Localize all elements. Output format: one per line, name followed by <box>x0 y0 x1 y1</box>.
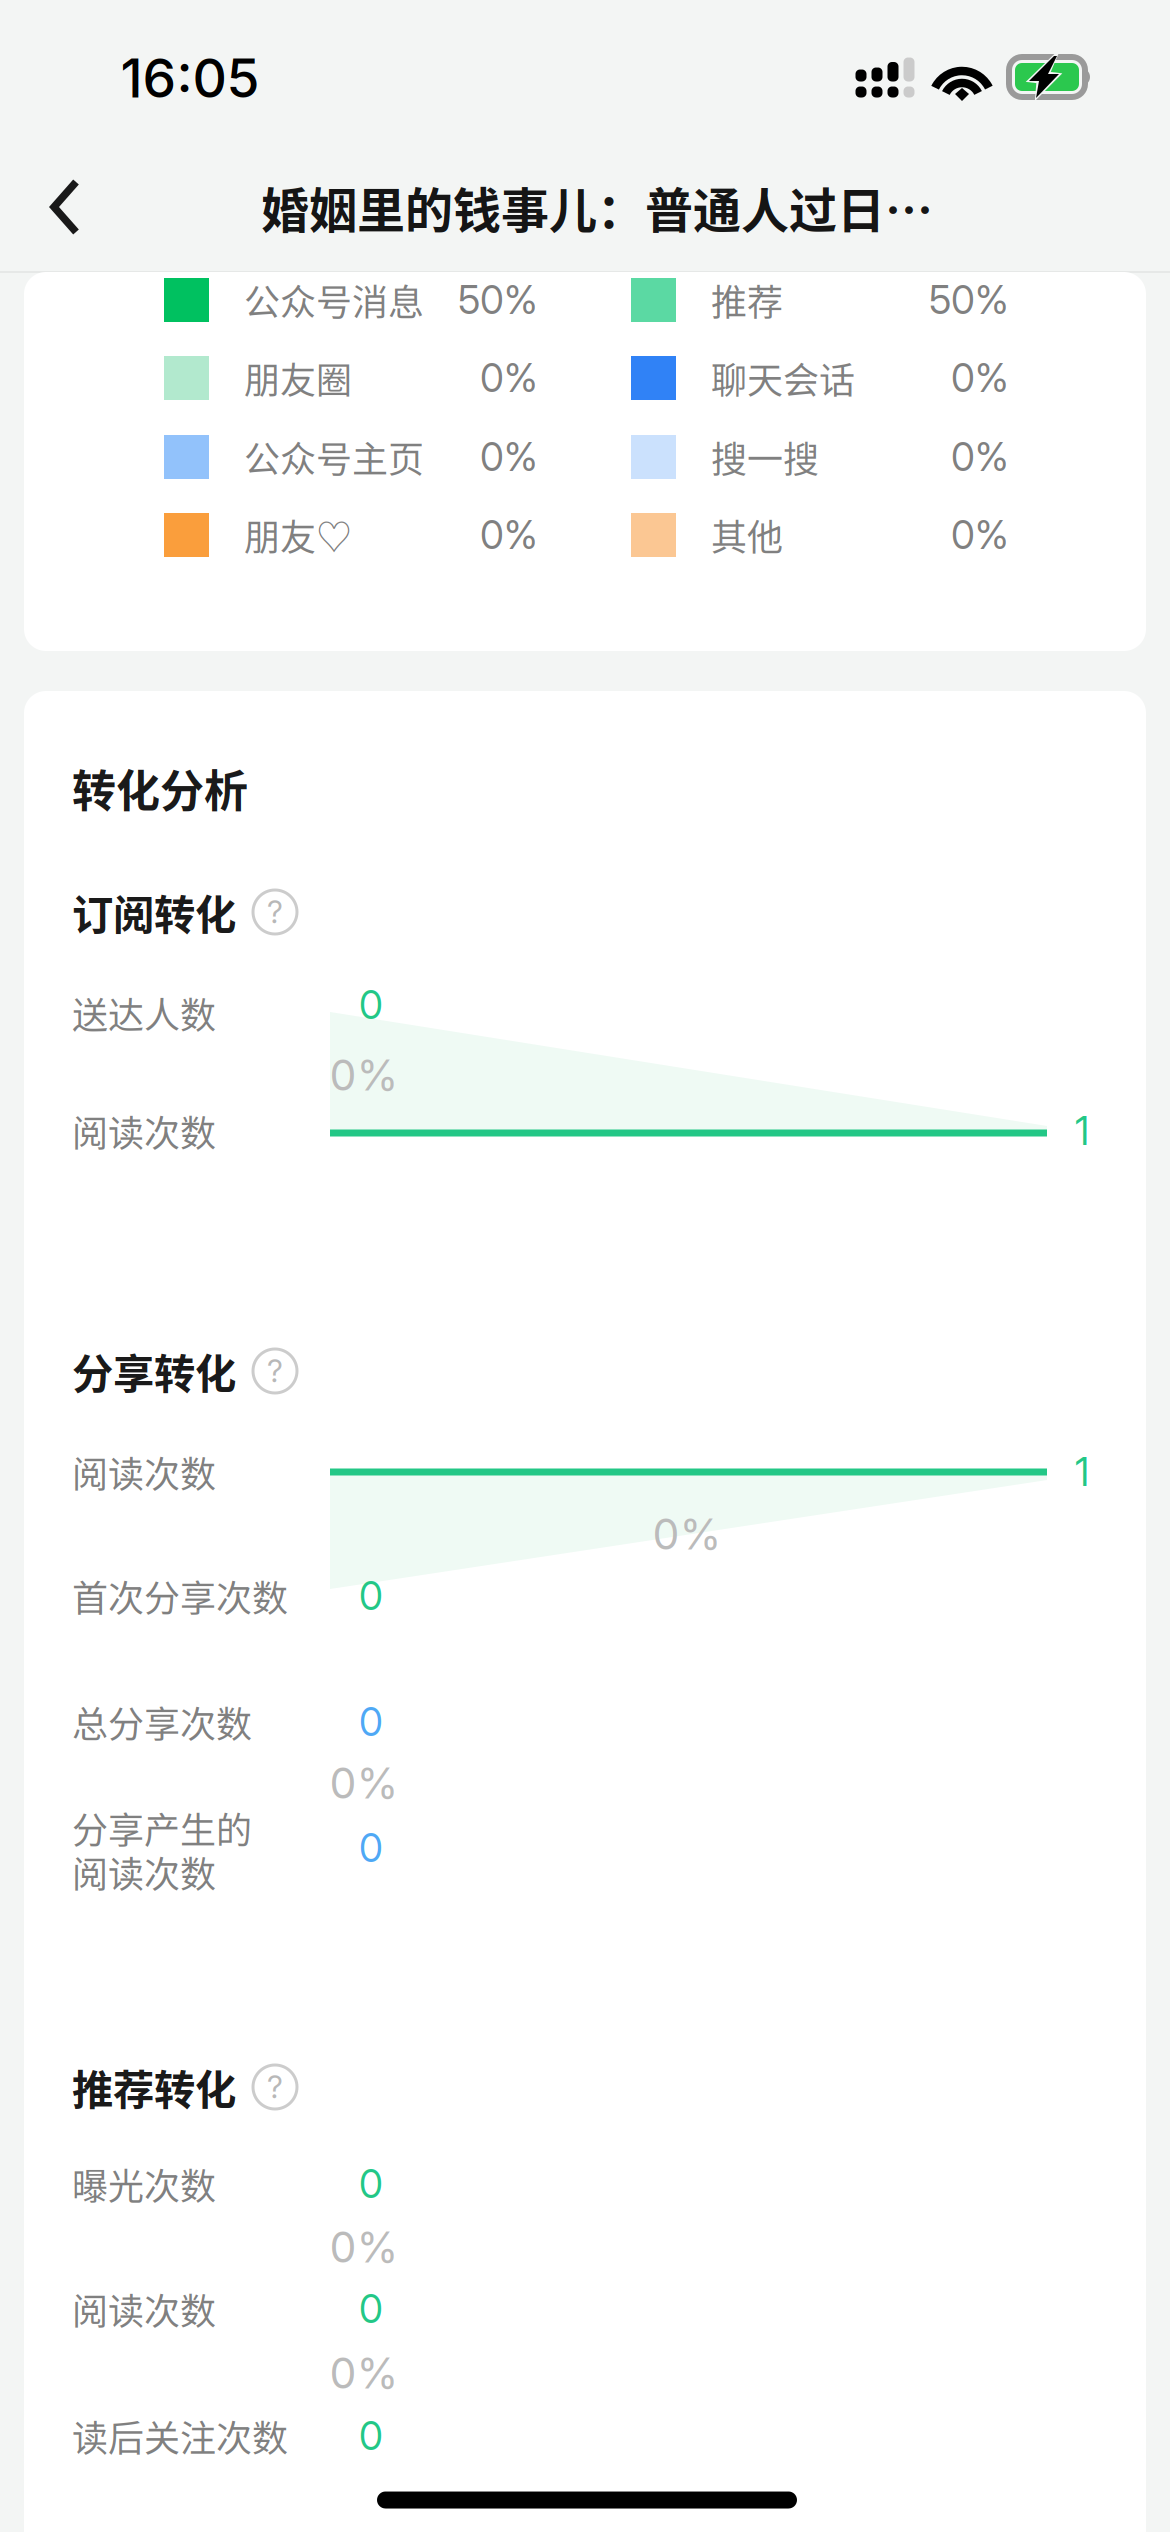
staticText: 朋友♡ <box>244 509 352 561</box>
staticText: 0 <box>359 1825 383 1871</box>
staticText: 推荐转化 <box>72 2057 236 2117</box>
staticText: 读后关注次数 <box>72 2410 288 2462</box>
staticText: 16:05 <box>120 46 259 110</box>
staticText: 1 <box>1075 1449 1089 1495</box>
staticText: 0 <box>359 982 383 1028</box>
staticText: 阅读次数 <box>72 1846 216 1898</box>
staticText: 1 <box>1075 1108 1089 1154</box>
staticText: 0% <box>329 1049 398 1101</box>
staticText: 0% <box>951 355 1009 401</box>
staticText: 0% <box>951 512 1009 558</box>
staticText: ? <box>267 2068 283 2105</box>
staticText: ? <box>267 1352 283 1389</box>
staticText: 0% <box>329 1757 398 1809</box>
staticText: 0% <box>329 2347 398 2399</box>
staticText: 阅读次数 <box>72 1446 216 1498</box>
staticText: 0 <box>359 2286 383 2332</box>
staticText: 阅读次数 <box>72 1105 216 1157</box>
staticText: 推荐 <box>711 274 783 326</box>
staticText: 总分享次数 <box>72 1696 252 1748</box>
staticText: 0 <box>359 1573 383 1619</box>
button[interactable]: 返回 <box>0 151 124 263</box>
staticText: 0 <box>359 1699 383 1745</box>
staticText: 首次分享次数 <box>72 1570 288 1622</box>
staticText: 0 <box>359 2161 383 2207</box>
staticText: 阅读次数 <box>72 2283 216 2335</box>
staticText: 订阅转化 <box>72 882 236 942</box>
staticText: 50% <box>458 277 538 323</box>
staticText: 聊天会话 <box>711 352 855 404</box>
staticText: 0% <box>480 512 538 558</box>
staticText: 朋友圈 <box>244 352 352 404</box>
staticText: 公众号消息 <box>244 274 424 326</box>
staticText: 分享转化 <box>72 1341 236 1401</box>
staticText: 0% <box>652 1508 721 1560</box>
staticText: 0% <box>951 434 1009 480</box>
staticText: 婚姻里的钱事儿：普通人过日… <box>261 172 933 242</box>
staticText: 公众号主页 <box>244 431 424 483</box>
staticText: 0% <box>480 434 538 480</box>
staticText: 转化分析 <box>72 756 248 820</box>
staticText: 0% <box>480 355 538 401</box>
staticText: 其他 <box>711 509 783 561</box>
staticText: 曝光次数 <box>72 2158 216 2210</box>
staticText: 50% <box>929 277 1009 323</box>
staticText: 0 <box>359 2413 383 2459</box>
staticText: 0% <box>329 2221 398 2273</box>
staticText: 搜一搜 <box>711 431 819 483</box>
staticText: ? <box>267 893 283 930</box>
staticText: 送达人数 <box>72 987 216 1039</box>
staticText: 分享产生的 <box>72 1802 252 1854</box>
